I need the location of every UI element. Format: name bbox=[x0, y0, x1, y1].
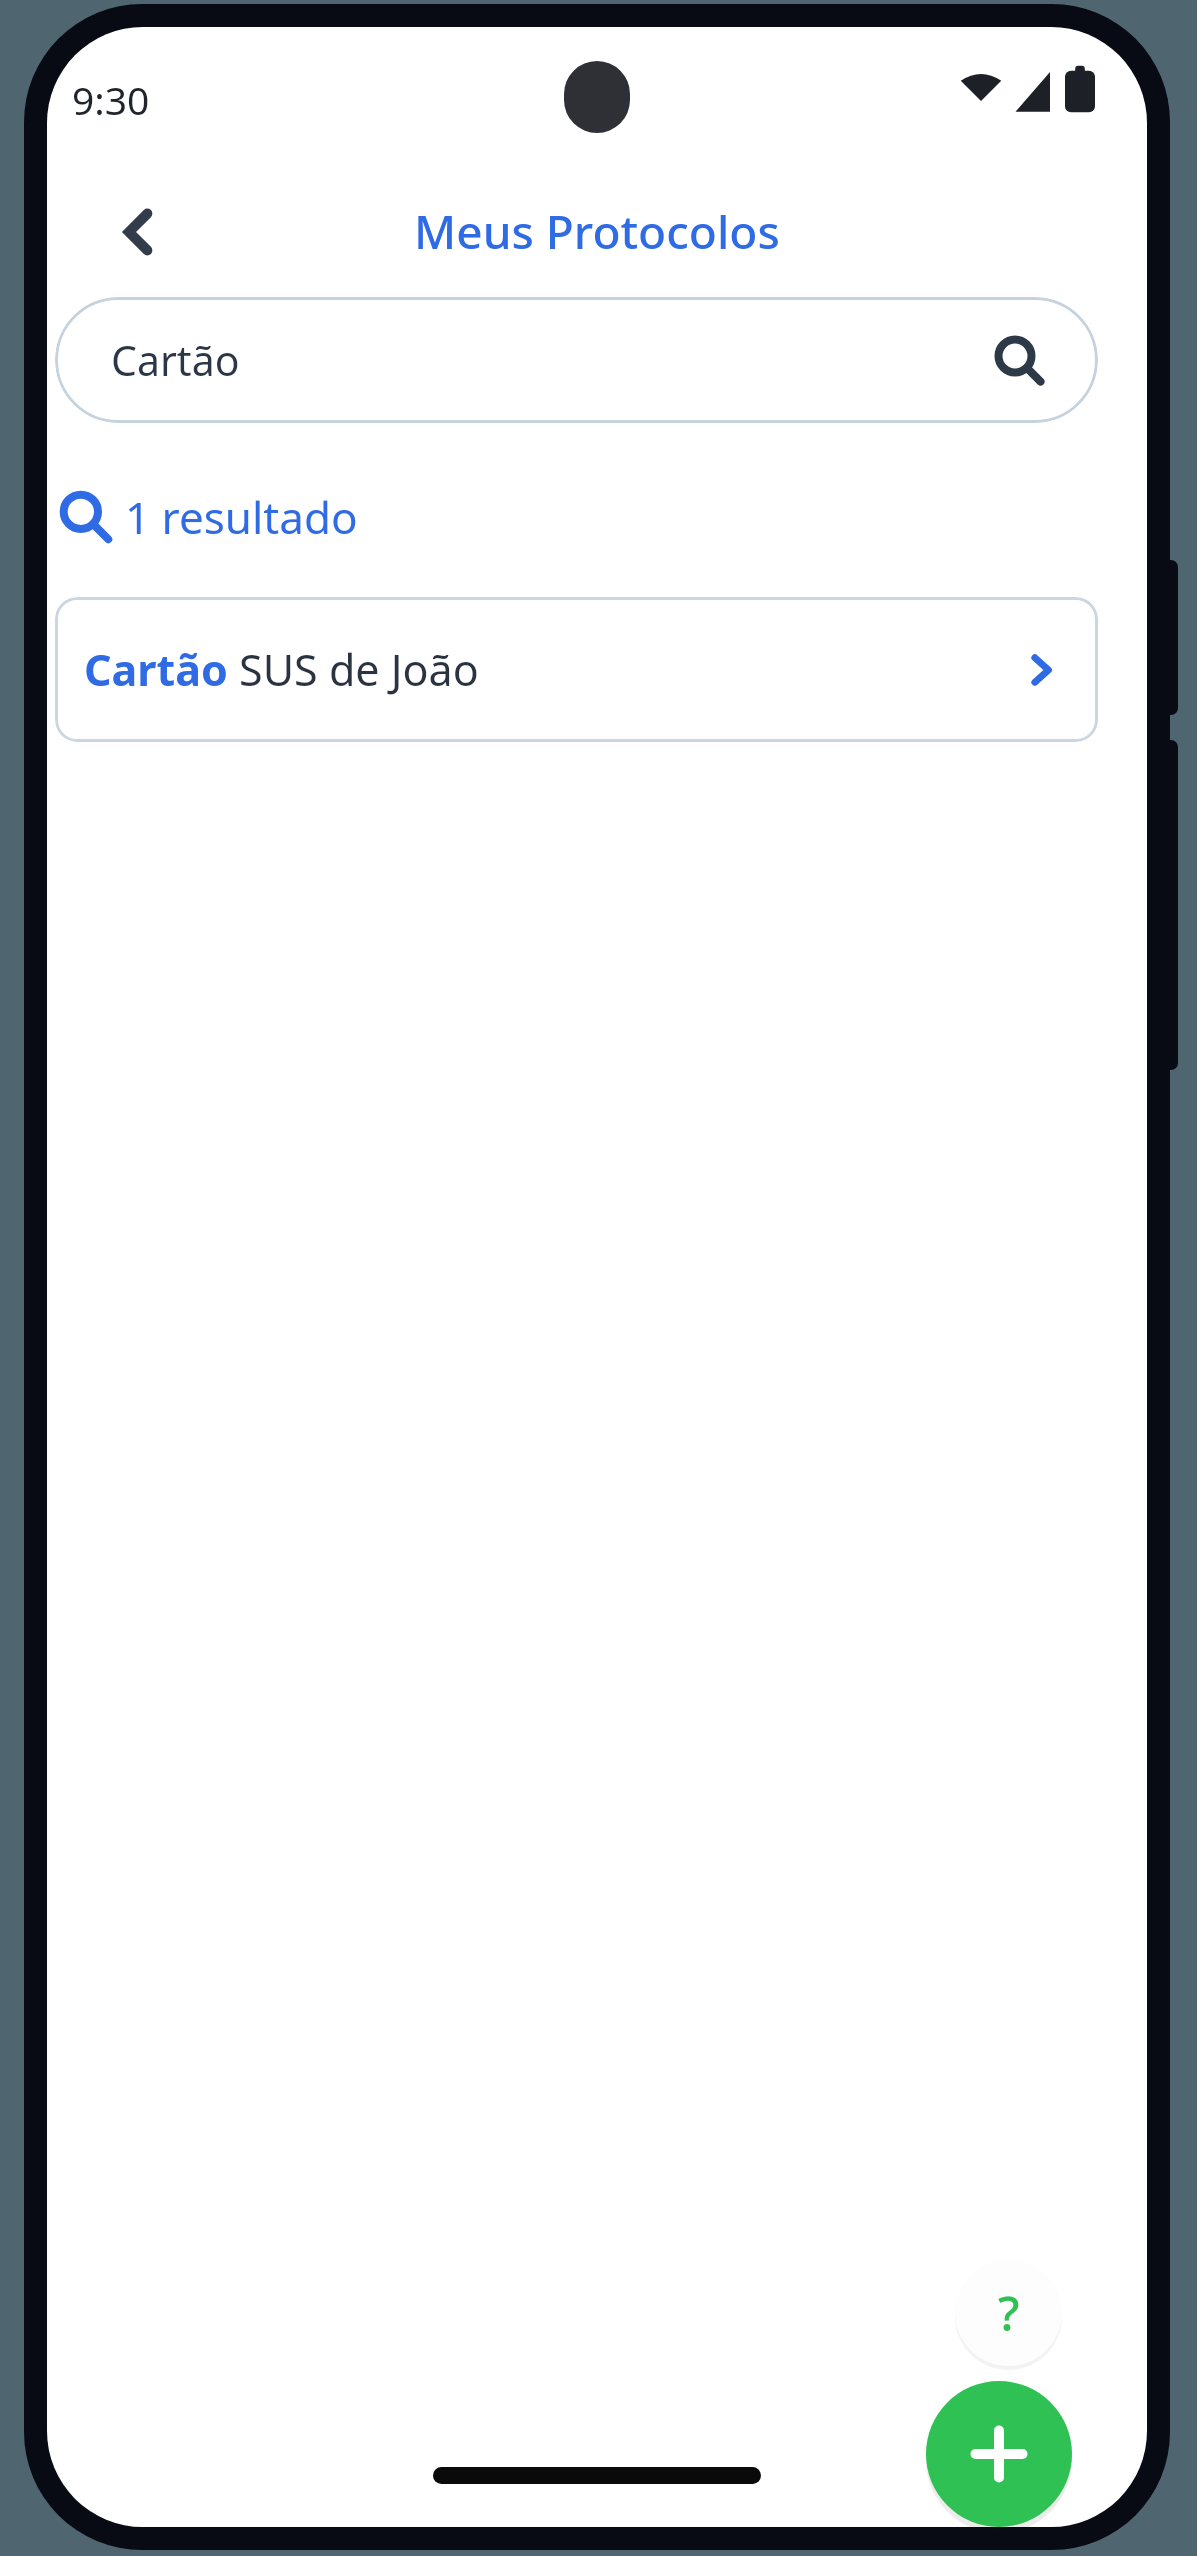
button[interactable]: Adicionar bbox=[926, 2381, 1072, 2527]
button[interactable]: Cartão SUS de João bbox=[55, 597, 1098, 742]
staticText: Cartão bbox=[111, 332, 240, 388]
staticText: 9:30 bbox=[72, 73, 150, 126]
staticText: ? bbox=[998, 2280, 1020, 2345]
staticText: Cartão SUS de João bbox=[84, 640, 479, 699]
button[interactable]: Voltar bbox=[85, 177, 195, 287]
staticText: 1 resultado bbox=[125, 487, 358, 547]
button[interactable]: Ajuda bbox=[955, 2259, 1062, 2366]
staticText: Meus Protocolos bbox=[414, 200, 780, 263]
button[interactable]: Cartão bbox=[55, 297, 1098, 423]
